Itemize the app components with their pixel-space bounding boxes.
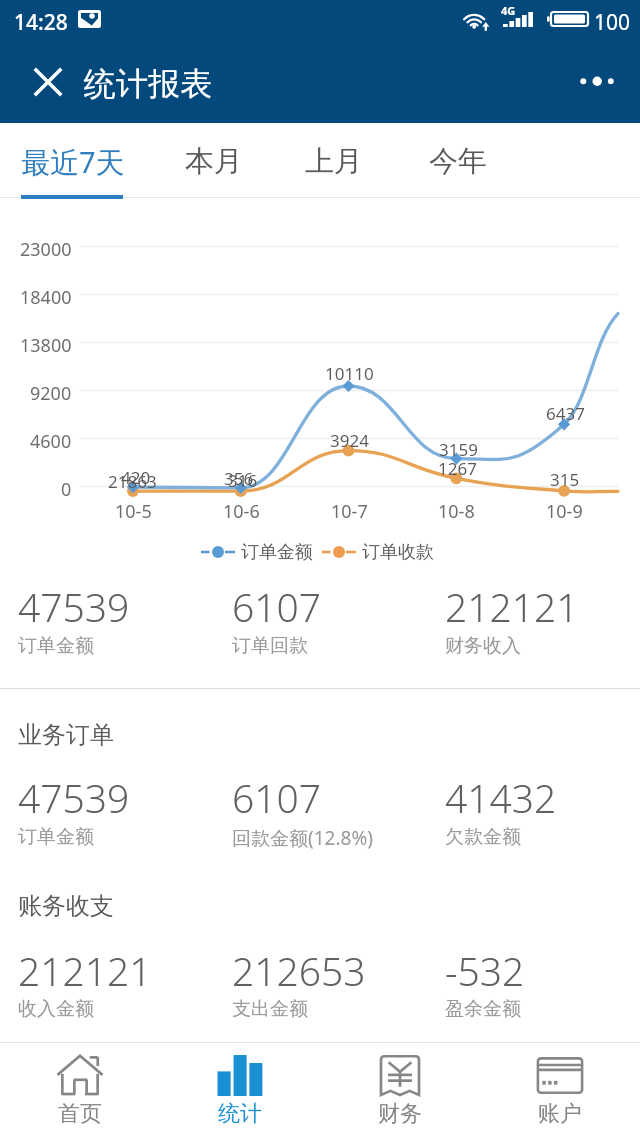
staticText: 420	[121, 466, 151, 489]
button[interactable]: 财务	[320, 1043, 480, 1138]
staticText: 上月	[305, 143, 363, 180]
staticText: 收入金额	[18, 997, 94, 1021]
staticText: 统计报表	[84, 64, 212, 104]
staticText: 315	[550, 468, 580, 491]
staticText: 订单金额	[241, 541, 313, 564]
staticText: 47539	[18, 771, 130, 824]
staticText: 316	[228, 469, 258, 492]
staticText: 6107	[232, 771, 322, 824]
staticText: 10-9	[546, 499, 583, 524]
staticText: 盈余金额	[445, 997, 521, 1021]
staticText: 13800	[20, 333, 72, 358]
staticText: 3924	[330, 429, 369, 452]
button[interactable]: 最近7天	[0, 123, 145, 198]
staticText: 212653	[232, 944, 366, 997]
button[interactable]: 本月	[145, 123, 282, 198]
button[interactable]: 今年	[386, 123, 529, 198]
staticText: 10-8	[438, 499, 475, 524]
button[interactable]: 统计	[160, 1043, 320, 1138]
staticText: -532	[445, 944, 525, 997]
staticText: 10-7	[331, 499, 368, 524]
staticText: 财务	[378, 1100, 422, 1128]
staticText: 业务订单	[18, 720, 114, 750]
staticText: 6437	[546, 402, 585, 425]
staticText: 订单收款	[362, 541, 434, 564]
staticText: 4G	[501, 3, 516, 18]
staticText: 欠款金额	[445, 825, 521, 849]
staticText: 10-5	[115, 499, 152, 524]
staticText: 6107	[232, 580, 322, 633]
staticText: 今年	[429, 143, 487, 180]
staticText: 3159	[439, 438, 478, 461]
staticText: 首页	[58, 1100, 102, 1128]
staticText: 订单回款	[232, 634, 308, 658]
staticText: 最近7天	[21, 142, 125, 182]
staticText: 4600	[30, 429, 72, 454]
staticText: 9200	[30, 381, 72, 406]
staticText: 47539	[18, 580, 130, 633]
button[interactable]: More options	[573, 57, 621, 105]
staticText: 财务收入	[445, 634, 521, 658]
staticText: 100	[594, 8, 631, 37]
button[interactable]: Close	[24, 58, 72, 106]
staticText: 41432	[445, 771, 557, 824]
staticText: 356	[224, 467, 254, 490]
staticText: 订单金额	[18, 825, 94, 849]
staticText: 回款金额(12.8%)	[232, 825, 373, 851]
staticText: 统计	[218, 1100, 262, 1128]
staticText: 订单金额	[18, 634, 94, 658]
staticText: 212121	[445, 580, 579, 633]
staticText: 10-6	[223, 499, 260, 524]
button[interactable]: 账户	[480, 1043, 640, 1138]
staticText: 18400	[20, 285, 72, 310]
staticText: 账务收支	[18, 891, 114, 921]
staticText: 212121	[18, 944, 152, 997]
staticText: 1267	[438, 457, 477, 480]
staticText: 账户	[538, 1100, 582, 1128]
staticText: 21863	[108, 470, 157, 493]
staticText: 0	[61, 477, 72, 502]
button[interactable]: 上月	[282, 123, 386, 198]
staticText: 10110	[325, 362, 374, 385]
staticText: 本月	[185, 143, 243, 180]
staticText: 支出金额	[232, 997, 308, 1021]
staticText: 14:28	[14, 8, 68, 37]
button[interactable]: 首页	[0, 1043, 160, 1138]
staticText: 23000	[20, 237, 72, 262]
